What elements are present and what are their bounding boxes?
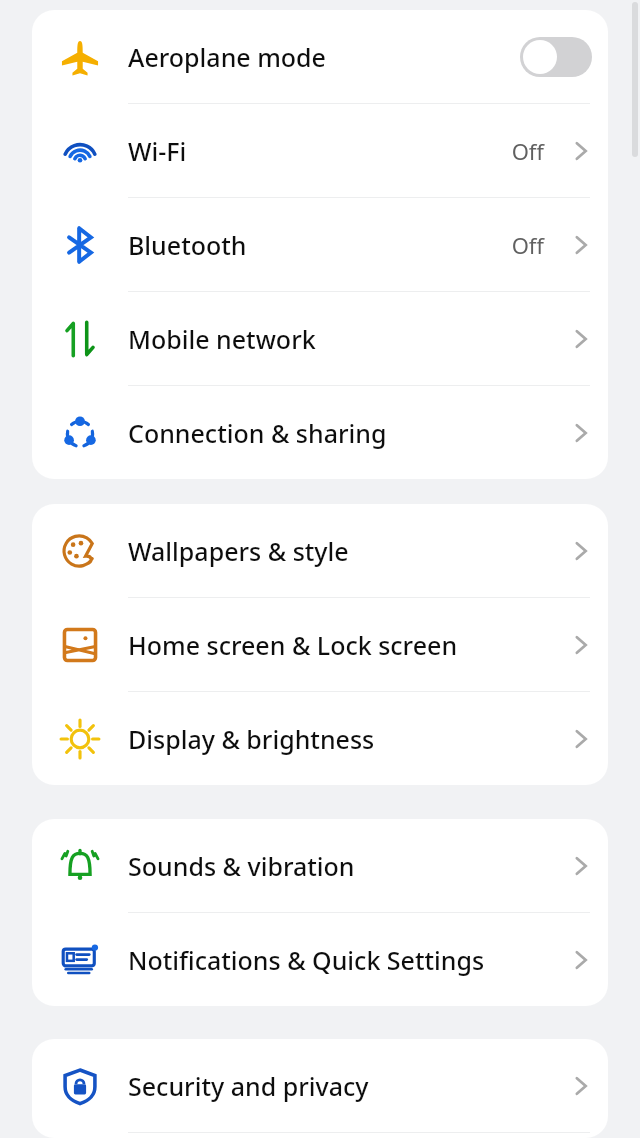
button[interactable]: Aeroplane mode toggle, off xyxy=(520,37,592,77)
staticText: Security and privacy xyxy=(128,1069,369,1103)
button[interactable]: Sounds & vibration xyxy=(32,819,608,912)
button[interactable]: Home screen & Lock screen xyxy=(32,598,608,691)
staticText: Home screen & Lock screen xyxy=(128,628,458,662)
button[interactable]: Wallpapers & style xyxy=(32,504,608,597)
staticText: Mobile network xyxy=(128,322,316,356)
staticText: Off xyxy=(511,230,544,260)
button[interactable]: Bluetooth xyxy=(32,198,608,291)
button[interactable]: Aeroplane mode xyxy=(32,10,608,103)
button[interactable]: Notifications & Quick Settings xyxy=(32,913,608,1006)
staticText: Sounds & vibration xyxy=(128,849,355,883)
staticText: Notifications & Quick Settings xyxy=(128,943,485,977)
staticText: Off xyxy=(511,136,544,166)
staticText: Wallpapers & style xyxy=(128,534,349,568)
button[interactable]: Security and privacy xyxy=(32,1039,608,1132)
staticText: Wi-Fi xyxy=(128,134,187,168)
button[interactable]: Connection & sharing xyxy=(32,386,608,479)
staticText: Connection & sharing xyxy=(128,416,387,450)
button[interactable]: Display & brightness xyxy=(32,692,608,785)
button[interactable]: Mobile network xyxy=(32,292,608,385)
staticText: Display & brightness xyxy=(128,722,375,756)
button[interactable]: Wi-Fi xyxy=(32,104,608,197)
staticText: Bluetooth xyxy=(128,228,247,262)
staticText: Aeroplane mode xyxy=(128,40,326,74)
